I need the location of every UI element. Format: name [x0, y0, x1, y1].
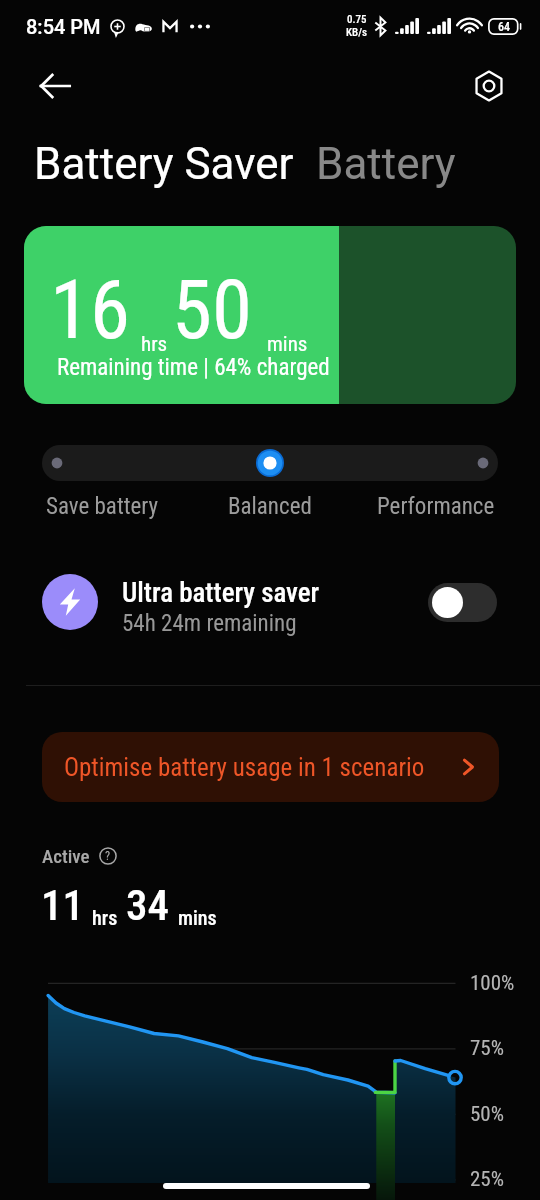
staticText: Performance: [377, 493, 495, 520]
button[interactable]: Toggle ultra battery saver: [428, 583, 497, 622]
staticText: 75%: [470, 1036, 505, 1061]
staticText: mins: [178, 906, 217, 929]
staticText: 54h 24m remaining: [122, 610, 297, 637]
button[interactable]: Back: [32, 63, 78, 109]
staticText: Active: [42, 845, 90, 867]
staticText: hrs: [92, 906, 118, 929]
staticText: 0.75: [347, 13, 367, 26]
staticText: Optimise battery usage in 1 scenario: [64, 753, 425, 782]
staticText: Save battery: [46, 493, 159, 520]
button[interactable]: Settings: [466, 63, 512, 109]
staticText: Balanced: [228, 493, 312, 520]
staticText: 8:54 PM: [26, 15, 101, 38]
button[interactable]: Help: [99, 847, 117, 865]
staticText: 100%: [470, 971, 515, 996]
button[interactable]: Ultra battery saver: [0, 562, 540, 644]
staticText: 50%: [470, 1102, 505, 1127]
staticText: Remaining time | 64% charged: [57, 354, 330, 381]
button[interactable]: Battery Saver: [34, 138, 294, 190]
button[interactable]: 16: [24, 226, 516, 404]
staticText: 16: [50, 263, 130, 358]
staticText: 34: [126, 880, 169, 930]
staticText: 25%: [470, 1167, 505, 1192]
staticText: Battery Saver: [34, 138, 294, 190]
button[interactable]: Performance: [355, 493, 516, 520]
button[interactable]: Save battery: [22, 493, 183, 520]
staticText: hrs: [141, 332, 168, 357]
staticText: mins: [267, 332, 308, 357]
staticText: 50: [172, 263, 252, 358]
staticText: ?: [105, 849, 111, 863]
staticText: 64: [498, 20, 510, 34]
staticText: 11: [41, 880, 84, 930]
staticText: Ultra battery saver: [122, 577, 320, 609]
staticText: KB/s: [346, 26, 367, 39]
button[interactable]: Optimise battery usage in 1 scenario: [42, 732, 499, 802]
button[interactable]: Battery: [316, 138, 456, 190]
staticText: Battery: [316, 138, 456, 190]
button[interactable]: Balanced: [190, 493, 350, 520]
